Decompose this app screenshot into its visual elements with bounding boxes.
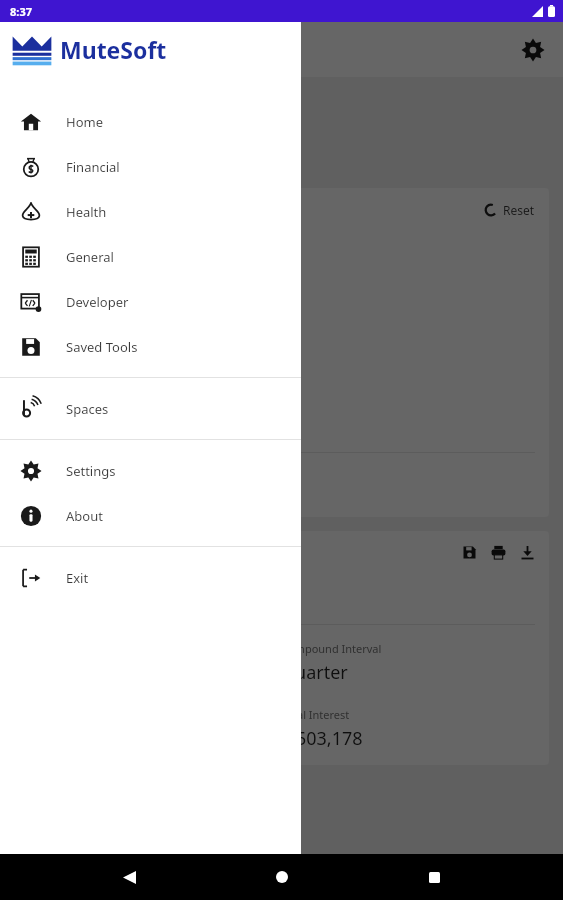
staticText: $ 603,178.77 xyxy=(28,578,159,608)
staticText: Spaces xyxy=(66,400,109,418)
button[interactable]: Health xyxy=(0,189,301,234)
staticText: General xyxy=(66,248,114,266)
button[interactable]: Calculate xyxy=(28,467,120,503)
staticText: Health xyxy=(66,203,107,221)
button[interactable]: About xyxy=(0,493,301,538)
button[interactable]: 7 xyxy=(28,364,108,394)
button[interactable]: MuteSoft xyxy=(0,22,301,77)
staticText: Compound Interest Calculator xyxy=(14,105,185,121)
button[interactable]: Settings xyxy=(0,448,301,493)
button[interactable]: 100,000 xyxy=(28,232,228,262)
button[interactable]: Financial xyxy=(0,144,301,189)
staticText: 8:37 xyxy=(10,4,32,19)
button[interactable]: 10 xyxy=(28,276,88,306)
staticText: years xyxy=(94,282,127,300)
staticText: Home xyxy=(66,113,103,131)
staticText: Financial xyxy=(66,158,120,176)
staticText: Saved Tools xyxy=(66,338,138,356)
staticText: About xyxy=(66,507,103,525)
staticText: $ 503,178 xyxy=(281,726,363,751)
button[interactable]: Quarterly xyxy=(28,320,228,350)
staticText: MuteSoft xyxy=(60,34,167,65)
staticText: Exit xyxy=(66,569,89,587)
staticText: Developer xyxy=(66,293,129,311)
staticText: Interest Calculator xyxy=(14,133,223,166)
staticText: June 2022 xyxy=(36,414,97,432)
staticText: Quarter xyxy=(281,660,348,685)
staticText: Reset xyxy=(503,202,535,218)
button[interactable]: Developer xyxy=(0,279,301,324)
staticText: Total Interest xyxy=(281,707,350,722)
staticText: % xyxy=(114,370,125,388)
button[interactable]: Exit xyxy=(0,555,301,600)
button[interactable]: Settings xyxy=(515,32,551,68)
button[interactable]: Saved Tools xyxy=(0,324,301,369)
button[interactable]: Home xyxy=(0,99,301,144)
staticText: Quarterly xyxy=(36,326,95,344)
button[interactable]: Spaces xyxy=(0,386,301,431)
button[interactable]: Back xyxy=(106,854,152,900)
button[interactable]: Home xyxy=(259,854,305,900)
staticText: Settings xyxy=(66,462,116,480)
staticText: 7 xyxy=(36,370,44,388)
staticText: Compound Interval xyxy=(281,641,382,656)
button[interactable]: General xyxy=(0,234,301,279)
staticText: 100,000 xyxy=(36,238,85,256)
staticText: 10 xyxy=(36,282,51,300)
button[interactable]: June 2022 xyxy=(28,408,228,438)
button[interactable]: Recent apps xyxy=(411,854,457,900)
